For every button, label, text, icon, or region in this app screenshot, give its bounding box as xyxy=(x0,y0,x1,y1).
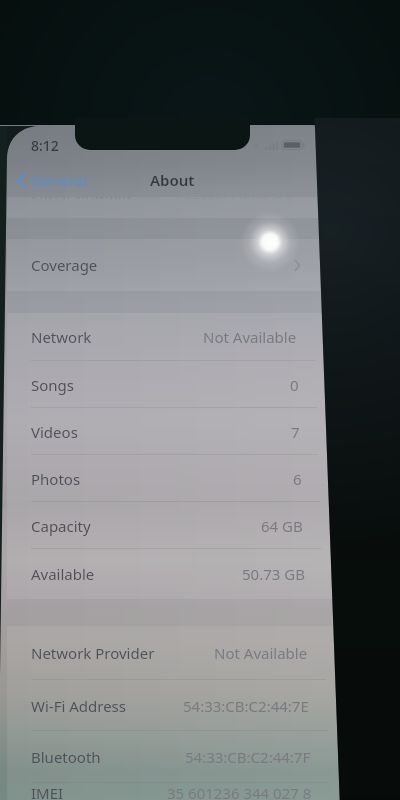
button[interactable]: Network Provider xyxy=(7,626,340,680)
staticText: IMEI xyxy=(31,783,64,800)
button[interactable]: Capacity xyxy=(7,502,340,549)
button[interactable]: IMEI xyxy=(7,783,340,800)
staticText: Network Provider xyxy=(31,643,155,663)
staticText: Not Available xyxy=(203,327,297,347)
staticText: 64 GB xyxy=(261,516,303,536)
staticText: 54:33:CB:C2:44:7E xyxy=(183,696,309,716)
button[interactable]: Wi-Fi Address xyxy=(7,680,340,731)
staticText: 6 xyxy=(293,469,302,489)
staticText: 7 xyxy=(291,422,300,442)
staticText: 8:12 xyxy=(31,136,59,155)
staticText: Network xyxy=(31,327,92,347)
staticText: Videos xyxy=(31,422,78,442)
staticText: Bluetooth xyxy=(31,747,101,767)
staticText: Songs xyxy=(31,375,74,395)
staticText: Wi-Fi Address xyxy=(31,696,126,716)
button[interactable]: General xyxy=(7,165,96,195)
staticText: 54:33:CB:C2:44:7F xyxy=(185,747,311,767)
staticText: About xyxy=(150,170,195,190)
staticText: Not Available xyxy=(214,643,308,663)
staticText: 35 601236 344 027 8 xyxy=(167,783,312,800)
staticText: Capacity xyxy=(31,516,91,536)
button[interactable]: Videos xyxy=(7,408,340,455)
button[interactable]: Bluetooth xyxy=(7,731,340,783)
staticText: 0 xyxy=(290,375,299,395)
other: Open Coverage xyxy=(294,260,300,271)
staticText: Serial Number xyxy=(31,197,133,199)
staticText: Available xyxy=(31,564,95,584)
staticText: Photos xyxy=(31,469,81,489)
button[interactable]: Available xyxy=(7,549,340,599)
staticText: General xyxy=(32,170,88,190)
button[interactable]: Network xyxy=(7,313,340,361)
staticText: Coverage xyxy=(31,255,98,275)
staticText: 50.73 GB xyxy=(242,564,305,584)
button[interactable]: Songs xyxy=(7,361,340,408)
button[interactable]: Photos xyxy=(7,455,340,502)
button[interactable]: Coverage xyxy=(7,239,340,291)
